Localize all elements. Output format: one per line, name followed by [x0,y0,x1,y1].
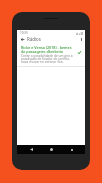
button[interactable]: More options [78,35,85,43]
button[interactable]: Ricke e Vensa (2018) - bemes de passagei… [17,45,85,64]
staticText: 10:35 [20,31,28,35]
button[interactable]: Home [44,145,58,154]
staticText: Ricke e Vensa (2018) - bemes de passagei… [21,45,73,54]
button[interactable]: Back [17,35,27,43]
button[interactable]: Recent apps [65,145,79,154]
staticText: Conte o possibilidade de um ano a parali… [21,54,73,64]
staticText: Rádios [27,36,41,42]
button[interactable]: Back [24,145,38,154]
